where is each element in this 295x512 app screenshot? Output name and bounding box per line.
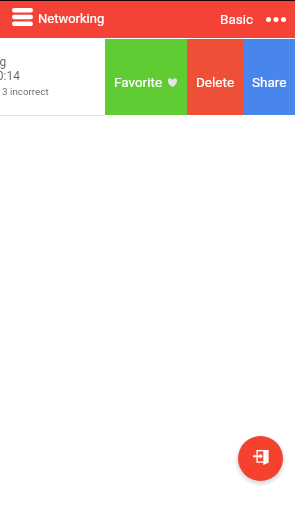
staticText: Networking (38, 11, 105, 26)
staticText: Networking (0, 55, 7, 69)
button[interactable]: Open navigation menu (6, 2, 39, 32)
button[interactable]: Basic (214, 4, 260, 34)
button[interactable]: More options (262, 4, 290, 34)
staticText: Basic (220, 11, 254, 27)
button[interactable]: Share (244, 39, 295, 115)
button[interactable]: Start session (238, 436, 283, 481)
staticText: 7 correct, 3 incorrect (0, 86, 49, 97)
button[interactable]: Delete (187, 39, 244, 115)
staticText: Share (252, 74, 287, 90)
button[interactable]: Favorite (105, 39, 187, 115)
staticText: 00:14 (0, 69, 20, 83)
staticText: Delete (196, 74, 235, 90)
staticText: Favorite (114, 74, 163, 90)
